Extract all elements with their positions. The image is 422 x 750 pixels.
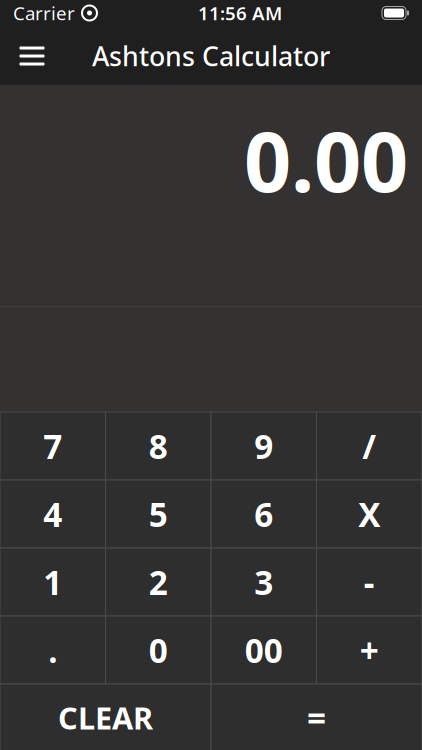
staticText: 11:56 AM [198,1,282,25]
button[interactable]: 6 [211,480,316,548]
staticText: 4 [43,492,62,536]
button[interactable]: . [0,616,105,684]
staticText: 6 [254,492,273,536]
button[interactable]: - [316,548,422,616]
button[interactable]: X [316,480,422,548]
staticText: 0 [149,628,168,672]
staticText: Carrier [13,1,75,25]
button[interactable]: Menu [5,27,59,85]
staticText: . [48,628,57,672]
button[interactable]: 00 [211,616,316,684]
button[interactable]: CLEAR [0,684,211,750]
staticText: Ashtons Calculator [92,38,330,74]
button[interactable]: / [316,412,422,480]
staticText: 7 [43,424,62,468]
button[interactable]: 1 [0,548,105,616]
staticText: X [358,492,380,536]
staticText: 00 [245,628,283,672]
button[interactable]: 8 [105,412,211,480]
button[interactable]: 0 [105,616,211,684]
staticText: 0.00 [244,105,408,215]
staticText: / [362,424,376,468]
button[interactable]: 7 [0,412,105,480]
staticText: 3 [254,560,273,604]
staticText: = [307,695,326,740]
staticText: 1 [43,560,62,604]
button[interactable]: 5 [105,480,211,548]
button[interactable]: 3 [211,548,316,616]
button[interactable]: + [316,616,422,684]
staticText: + [360,628,379,672]
staticText: 2 [149,560,168,604]
button[interactable]: = [211,684,422,750]
staticText: CLEAR [58,697,153,738]
button[interactable]: 2 [105,548,211,616]
staticText: 8 [149,424,168,468]
staticText: 9 [254,424,273,468]
staticText: - [364,560,375,604]
button[interactable]: 9 [211,412,316,480]
button[interactable]: 4 [0,480,105,548]
staticText: 5 [149,492,168,536]
